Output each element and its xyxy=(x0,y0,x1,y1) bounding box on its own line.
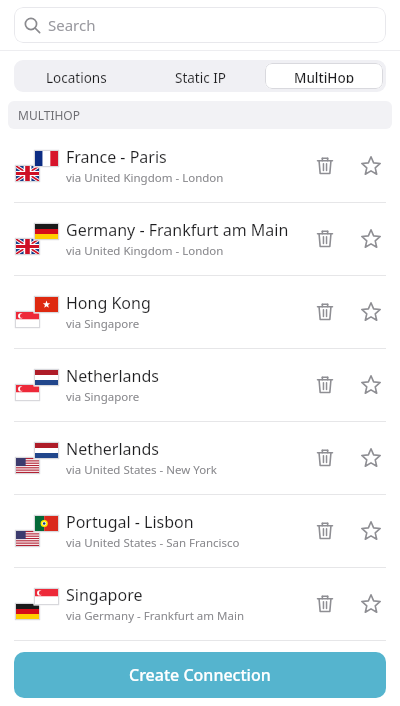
button[interactable]: Delete France - Paris xyxy=(302,143,348,189)
staticText: Portugal - Lisbon xyxy=(66,511,194,533)
staticText: via Germany - Frankfurt am Main xyxy=(66,608,245,624)
button[interactable]: MultiHop xyxy=(265,63,383,89)
staticText: via United States - New York xyxy=(66,462,217,478)
button[interactable]: France - Paris xyxy=(0,130,400,202)
staticText: MultiHop xyxy=(294,69,355,83)
button[interactable]: Search xyxy=(14,7,386,43)
button[interactable]: Delete Netherlands xyxy=(302,435,348,481)
staticText: Singapore xyxy=(66,584,143,606)
staticText: via Singapore xyxy=(66,389,140,405)
button[interactable]: Delete Hong Kong xyxy=(302,289,348,335)
staticText: MULTIHOP xyxy=(18,107,80,123)
button[interactable]: Delete Singapore xyxy=(302,581,348,627)
button[interactable]: Netherlands xyxy=(0,349,400,421)
staticText: Germany - Frankfurt am Main xyxy=(66,219,289,241)
button[interactable]: Delete Portugal - Lisbon xyxy=(302,508,348,554)
staticText: Netherlands xyxy=(66,365,159,387)
staticText: via Singapore xyxy=(66,316,140,332)
button[interactable]: Netherlands xyxy=(0,422,400,494)
staticText: via United Kingdom - London xyxy=(66,170,224,186)
staticText: Hong Kong xyxy=(66,292,151,314)
button[interactable]: Portugal - Lisbon xyxy=(0,495,400,567)
button[interactable]: Favorite Netherlands xyxy=(348,362,394,408)
button[interactable]: Favorite Singapore xyxy=(348,581,394,627)
staticText: France - Paris xyxy=(66,146,167,168)
button[interactable]: Delete Germany - Frankfurt am Main xyxy=(302,216,348,262)
button[interactable]: Favorite Germany - Frankfurt am Main xyxy=(348,216,394,262)
staticText: Netherlands xyxy=(66,438,159,460)
button[interactable]: Static IP xyxy=(141,63,259,89)
button[interactable]: Locations xyxy=(17,63,135,89)
button[interactable]: Favorite France - Paris xyxy=(348,143,394,189)
staticText: Static IP xyxy=(175,69,226,83)
button[interactable]: Delete Netherlands xyxy=(302,362,348,408)
staticText: Create Connection xyxy=(129,664,271,686)
button[interactable]: Favorite Netherlands xyxy=(348,435,394,481)
button[interactable]: Create Connection xyxy=(14,652,386,698)
staticText: via United States - San Francisco xyxy=(66,535,240,551)
staticText: Search xyxy=(48,15,96,35)
button[interactable]: Hong Kong xyxy=(0,276,400,348)
button[interactable]: Favorite Hong Kong xyxy=(348,289,394,335)
staticText: via United Kingdom - London xyxy=(66,243,224,259)
button[interactable]: Favorite Portugal - Lisbon xyxy=(348,508,394,554)
button[interactable]: Germany - Frankfurt am Main xyxy=(0,203,400,275)
staticText: Locations xyxy=(46,69,107,83)
button[interactable]: Singapore xyxy=(0,568,400,640)
